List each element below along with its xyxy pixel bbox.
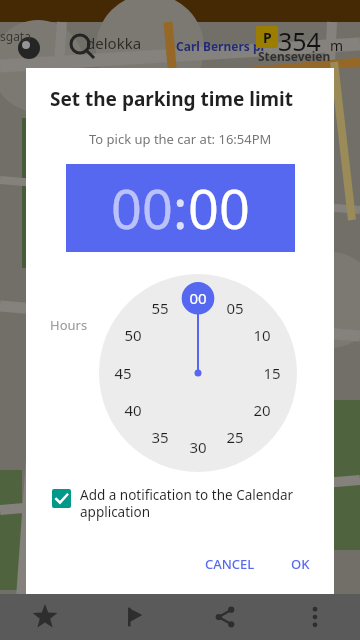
staticText: Add a notification to the Calendar appli… <box>80 486 314 521</box>
staticText: 354 <box>278 24 321 58</box>
staticText: sgata <box>0 28 31 44</box>
staticText: P <box>263 28 272 47</box>
staticText: 00 <box>188 171 250 245</box>
staticText: 20 <box>253 400 271 420</box>
staticText: 15 <box>263 363 281 383</box>
staticText: m <box>330 36 344 55</box>
button[interactable]: CANCEL <box>195 549 265 579</box>
staticText: 35 <box>151 427 169 447</box>
staticText: 25 <box>226 427 244 447</box>
staticText: OK <box>291 555 310 573</box>
button[interactable]: Add a notification to the Calendar appli… <box>52 486 314 521</box>
staticText: : <box>173 171 188 245</box>
button[interactable]: Favorite <box>0 594 90 640</box>
staticText: To pick up the car at: 16:54PM <box>89 130 272 148</box>
button[interactable]: More options <box>270 594 360 640</box>
staticText: Stenseveien <box>258 48 331 64</box>
staticText: 50 <box>124 325 142 345</box>
button[interactable]: Directions <box>90 594 180 640</box>
staticText: 30 <box>189 437 207 457</box>
staticText: 00 <box>189 288 207 308</box>
button[interactable]: Share <box>180 594 270 640</box>
staticText: 45 <box>114 363 132 383</box>
staticText: delokka <box>86 33 142 53</box>
button[interactable]: OK <box>281 549 320 579</box>
staticText: Carl Berners pl <box>176 38 265 54</box>
button[interactable]: 00 <box>66 164 295 252</box>
staticText: Set the parking time limit <box>50 86 294 112</box>
staticText: 55 <box>151 298 169 318</box>
staticText: 05 <box>226 298 244 318</box>
staticText: Hours <box>50 316 88 334</box>
staticText: CANCEL <box>205 555 255 573</box>
staticText: 10 <box>253 325 271 345</box>
staticText: 00 <box>111 171 173 245</box>
staticText: 40 <box>124 400 142 420</box>
